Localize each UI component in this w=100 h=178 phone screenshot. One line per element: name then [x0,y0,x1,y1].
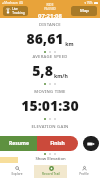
staticText: ▾ 76% [84,1,93,5]
button[interactable]: Resume [0,136,37,151]
staticText: Tracking [12,11,25,15]
button[interactable]: Explore [0,165,34,178]
staticText: Map [80,8,89,14]
button[interactable]: Live [3,6,28,16]
staticText: 15:01:30 [21,96,79,115]
staticText: km [65,40,74,47]
staticText: Profile [79,172,89,176]
button[interactable]: Record Trail [34,165,67,178]
staticText: 07:21:08 [38,12,62,20]
staticText: DISTANCE [39,22,61,28]
staticText: MOVING TIME [34,89,66,95]
staticText: RIDE [46,3,54,7]
staticText: AVERAGE SPEED [32,54,68,60]
staticText: 86,61 [26,29,64,48]
staticText: Resume [9,140,29,147]
staticText: ◂ Moshaun 4G [2,1,23,5]
staticText: Live [12,7,18,11]
button[interactable]: Map [71,6,97,16]
button[interactable]: Profile [67,165,100,178]
button[interactable]: Finish [37,136,78,151]
staticText: km/h [54,72,68,79]
staticText: Explore [11,172,23,176]
staticText: Finish [50,140,65,147]
staticText: ELEVATION GAIN [31,124,69,130]
button[interactable]: Camera [83,136,99,151]
staticText: PAUSED [44,7,56,11]
staticText: Show Elevation [35,156,66,162]
staticText: Record Trail [42,172,60,176]
staticText: 5,8 [32,61,53,80]
staticText: 1 087 [28,131,65,150]
